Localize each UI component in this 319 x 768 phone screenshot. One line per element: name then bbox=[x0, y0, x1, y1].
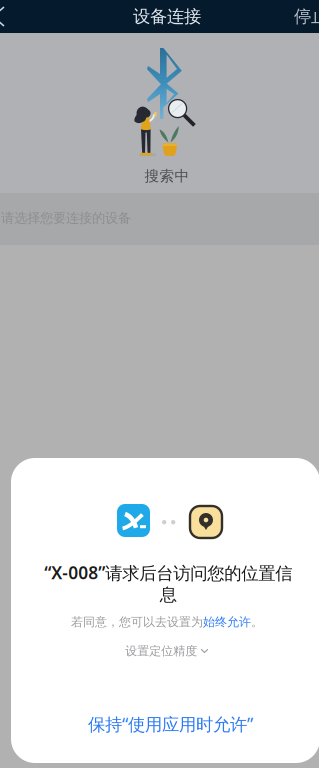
staticText: 保持“使用应用时允许” bbox=[88, 712, 253, 735]
staticText: 若同意，您可以去设置为 bbox=[71, 615, 203, 629]
staticText: 设备连接 bbox=[133, 6, 201, 27]
button[interactable]: 保持“使用应用时允许” bbox=[16, 702, 319, 746]
staticText: 请选择您要连接的设备 bbox=[1, 210, 131, 226]
staticText: 设置定位精度 bbox=[125, 644, 197, 658]
staticText: 始终允许 bbox=[203, 615, 251, 629]
staticText: 。 bbox=[251, 615, 263, 629]
button[interactable]: Back bbox=[0, 0, 24, 33]
staticText: “X-008”请求后台访问您的位置信息 bbox=[44, 561, 292, 605]
staticText: 停止 bbox=[294, 6, 319, 27]
button[interactable]: 停止 bbox=[294, 0, 319, 33]
button[interactable]: 设置定位精度 bbox=[37, 641, 297, 661]
staticText: 搜索中 bbox=[144, 167, 189, 185]
